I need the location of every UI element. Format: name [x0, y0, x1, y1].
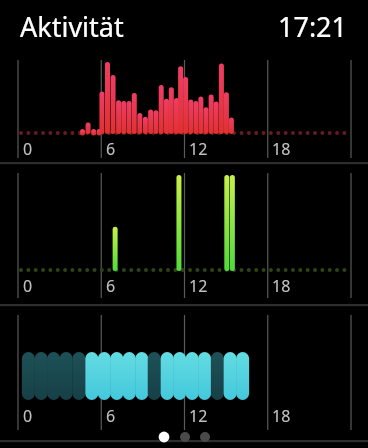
staticText: 18 — [272, 275, 291, 297]
staticText: 6 — [106, 138, 116, 160]
button[interactable]: Herzfrequenz-Diagramm — [0, 0, 368, 110]
staticText: 0 — [23, 405, 33, 427]
staticText: 18 — [272, 405, 291, 427]
staticText: 12 — [189, 138, 208, 160]
staticText: 0 — [23, 138, 33, 160]
staticText: 6 — [106, 275, 116, 297]
staticText: 12 — [189, 405, 208, 427]
staticText: Aktivität — [20, 8, 124, 45]
staticText: 18 — [272, 138, 291, 160]
staticText: 12 — [189, 275, 208, 297]
staticText: 0 — [23, 275, 33, 297]
staticText: 17:21 — [278, 8, 348, 45]
staticText: 6 — [106, 405, 116, 427]
